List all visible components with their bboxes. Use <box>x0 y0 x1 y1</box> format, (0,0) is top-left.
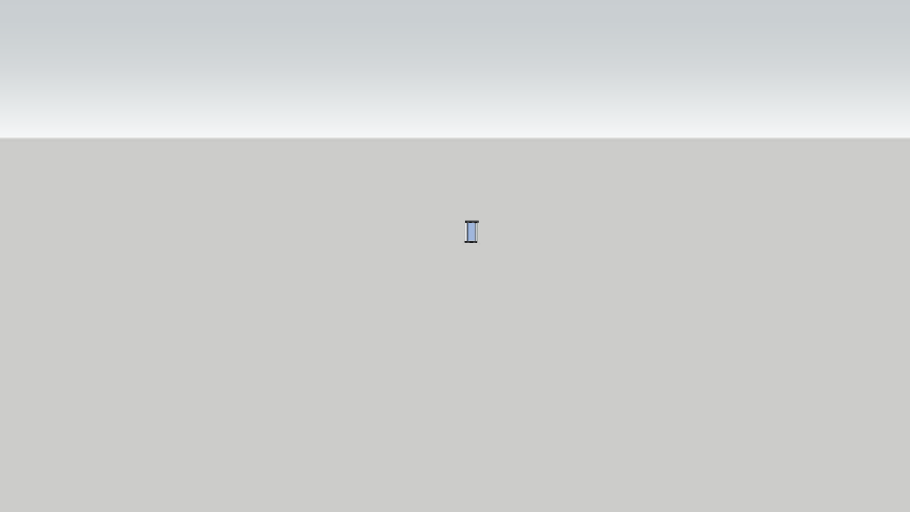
button[interactable]: iPhone <box>0 0 910 512</box>
